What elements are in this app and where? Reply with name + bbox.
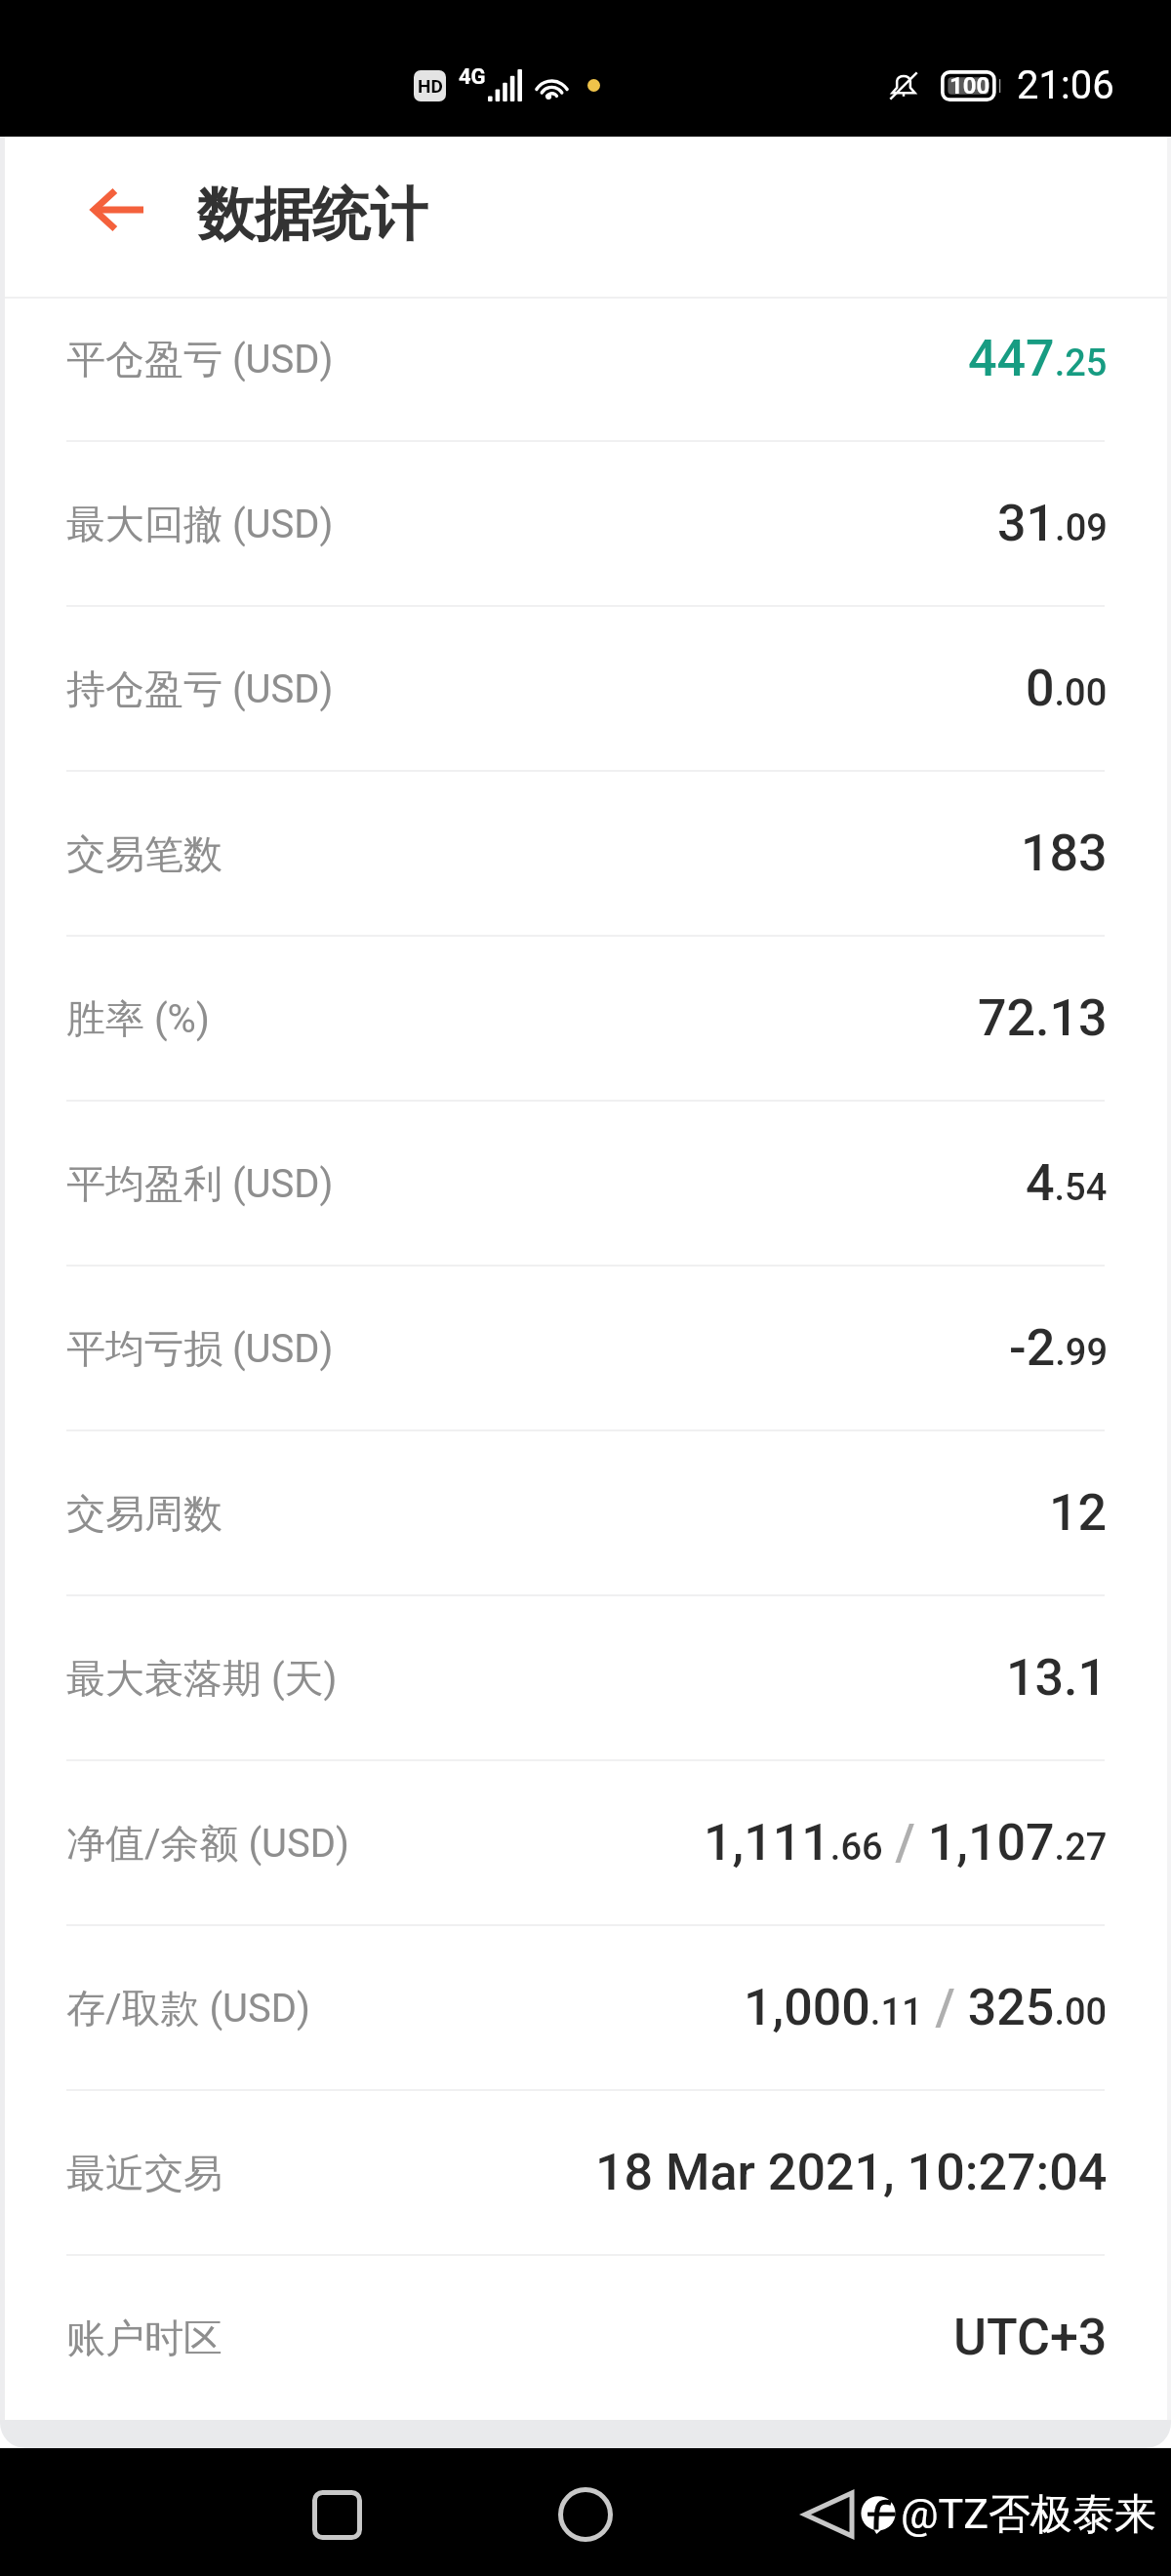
button[interactable]: 交易周数 <box>0 1431 1171 1594</box>
staticText: 持仓盈亏 (USD) <box>66 664 334 713</box>
button[interactable]: 平均盈利 (USD) <box>0 1102 1171 1265</box>
button[interactable]: 最大衰落期 (天) <box>0 1596 1171 1759</box>
staticText: 交易笔数 <box>66 829 222 878</box>
staticText: 净值/余额 (USD) <box>66 1819 349 1868</box>
staticText: 平仓盈亏 (USD) <box>66 335 334 383</box>
staticText: @TZ否极泰来 <box>901 2488 1157 2541</box>
staticText: 交易周数 <box>66 1489 222 1538</box>
staticText: 数据统计 <box>197 179 427 251</box>
button[interactable]: 交易笔数 <box>0 772 1171 935</box>
staticText: 胜率 (%) <box>66 994 210 1043</box>
staticText: 31.09 <box>997 494 1108 553</box>
staticText: 183 <box>1021 824 1108 883</box>
staticText: 最近交易 <box>66 2149 222 2197</box>
button[interactable]: 持仓盈亏 (USD) <box>0 607 1171 770</box>
button[interactable]: 最近交易 <box>0 2091 1171 2254</box>
staticText: 12 <box>1049 1483 1108 1543</box>
staticText: 账户时区 <box>66 2314 222 2362</box>
staticText: 13.1 <box>1006 1648 1108 1708</box>
staticText: 100 <box>949 72 990 100</box>
staticText: 最大衰落期 (天) <box>66 1654 338 1703</box>
button[interactable]: 账户时区 <box>0 2256 1171 2419</box>
staticText: 0.00 <box>1026 659 1108 718</box>
button[interactable]: 最大回撤 (USD) <box>0 442 1171 605</box>
staticText: 18 Mar 2021, 10:27:04 <box>595 2143 1108 2202</box>
staticText: 1,111.66 / 1,107.27 <box>704 1813 1108 1872</box>
button[interactable]: 平均亏损 (USD) <box>0 1267 1171 1429</box>
staticText: 平均盈利 (USD) <box>66 1159 334 1208</box>
button[interactable]: Recents <box>293 2471 381 2558</box>
button[interactable]: 平仓盈亏 (USD) <box>0 277 1171 440</box>
button[interactable]: 净值/余额 (USD) <box>0 1761 1171 1924</box>
staticText: 存/取款 (USD) <box>66 1984 310 2033</box>
staticText: UTC+3 <box>953 2308 1108 2367</box>
staticText: 4G <box>459 64 486 90</box>
staticText: 447.25 <box>968 329 1108 388</box>
button[interactable]: 胜率 (%) <box>0 937 1171 1100</box>
button[interactable]: Home <box>542 2471 629 2558</box>
staticText: 4.54 <box>1026 1153 1108 1213</box>
button[interactable]: Back <box>798 2484 859 2545</box>
staticText: 72.13 <box>978 988 1108 1048</box>
staticText: 最大回撤 (USD) <box>66 500 334 548</box>
staticText: 1,000.11 / 325.00 <box>744 1978 1108 2037</box>
staticText: 平均亏损 (USD) <box>66 1324 334 1373</box>
staticText: -2.99 <box>1009 1318 1108 1378</box>
button[interactable]: Back <box>70 163 164 257</box>
button[interactable]: 存/取款 (USD) <box>0 1926 1171 2089</box>
staticText: HD <box>418 75 443 97</box>
staticText: 21:06 <box>1017 62 1114 108</box>
